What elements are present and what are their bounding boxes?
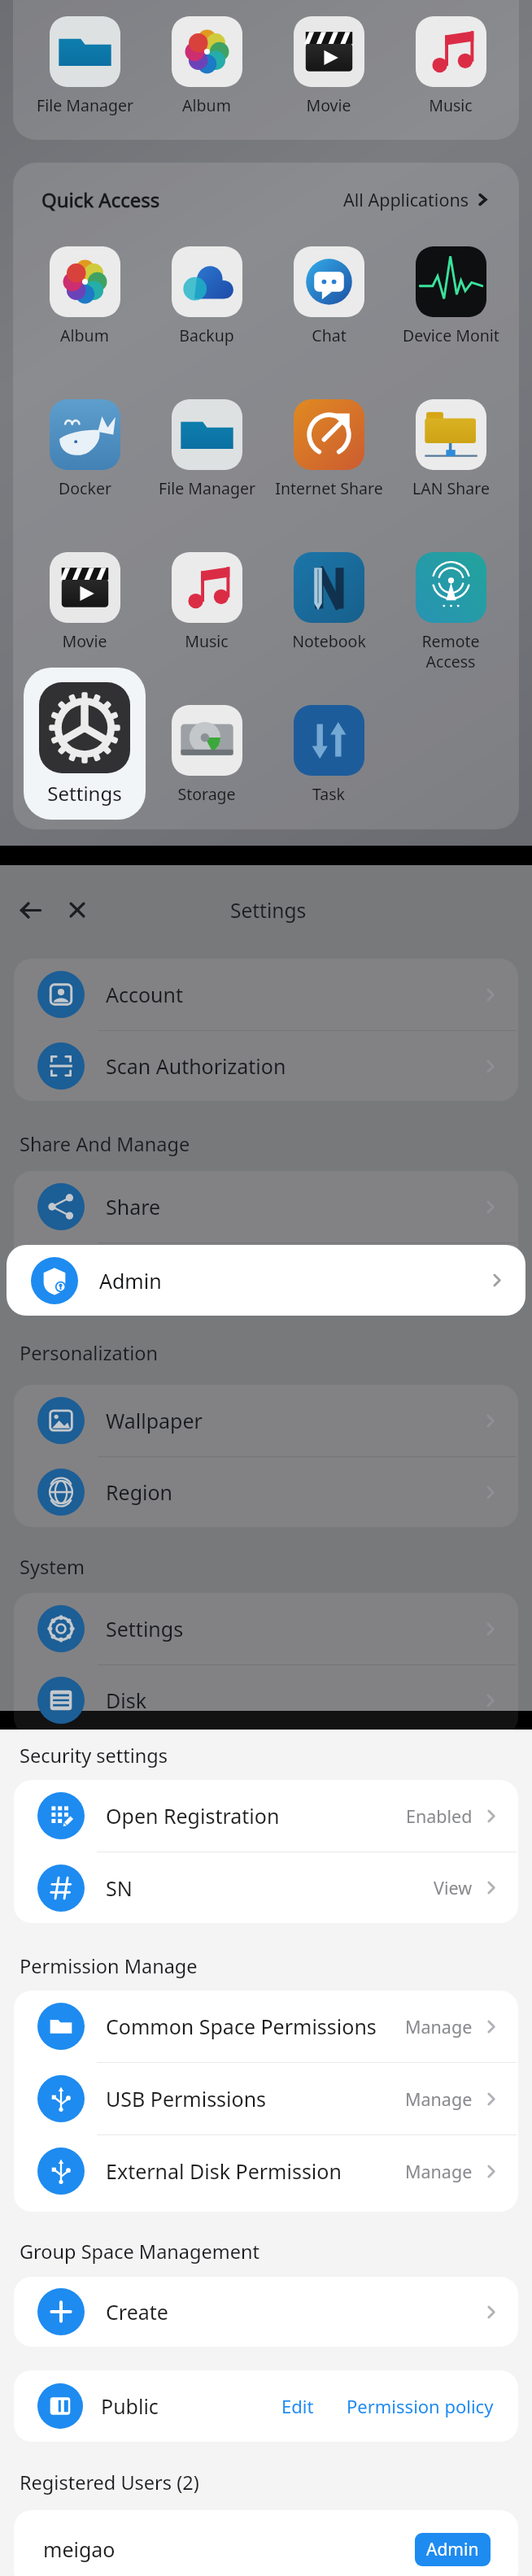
staticText: Music [429, 94, 473, 116]
staticText: Personalization [20, 1340, 158, 1366]
staticText: Storage [177, 783, 236, 805]
staticText: Album [60, 324, 109, 346]
staticText: All Applications [343, 188, 469, 211]
staticText: meigao [43, 2535, 116, 2563]
staticText: Manage [405, 2087, 473, 2111]
staticText: File Manager [37, 94, 133, 116]
staticText: Backup [179, 324, 234, 346]
staticText: Music [185, 630, 229, 652]
button[interactable]: Admin [7, 1245, 525, 1316]
button[interactable]: Permission policy [342, 2387, 499, 2425]
button[interactable]: Close [58, 890, 97, 929]
button[interactable]: Task [268, 693, 389, 805]
staticText: Chat [312, 324, 347, 346]
staticText: Task [312, 783, 345, 805]
button[interactable]: Public [14, 2370, 518, 2442]
staticText: Admin [106, 1264, 168, 1292]
staticText: Region [106, 1478, 173, 1506]
staticText: Notebook [292, 630, 366, 652]
button[interactable]: All Applications [343, 188, 490, 211]
staticText: Create [106, 2298, 168, 2326]
button[interactable]: Backup [146, 234, 267, 346]
staticText: Device Monit [403, 324, 499, 346]
staticText: LAN Share [412, 477, 490, 499]
button[interactable]: Notebook [268, 540, 389, 652]
staticText: Edit [281, 2394, 314, 2418]
staticText: Settings [106, 1615, 184, 1643]
staticText: Quick Access [41, 186, 160, 213]
button[interactable]: LAN Share [390, 387, 511, 499]
button[interactable]: USB Permissions [14, 2063, 518, 2134]
staticText: Security settings [20, 1743, 168, 1769]
staticText: Disk [106, 1686, 147, 1714]
staticText: Open Registration [106, 1802, 280, 1830]
staticText: Settings [230, 897, 307, 924]
button[interactable]: Wallpaper [14, 1385, 518, 1456]
staticText: Admin [99, 1267, 162, 1295]
staticText: Permission policy [347, 2394, 494, 2418]
button[interactable]: Account [14, 959, 518, 1030]
staticText: Manage [405, 2160, 473, 2183]
button[interactable]: Open Registration [14, 1780, 518, 1851]
staticText: Share [106, 1193, 161, 1221]
staticText: Enabled [406, 1804, 473, 1828]
staticText: Remote Access [421, 630, 480, 672]
staticText: Common Space Permissions [106, 2012, 377, 2040]
staticText: External Disk Permission [106, 2157, 342, 2185]
staticText: Public [101, 2392, 159, 2420]
staticText: Wallpaper [106, 1407, 203, 1434]
button[interactable]: Scan Authorization [14, 1031, 518, 1101]
button[interactable]: Back [11, 890, 50, 929]
staticText: Permission Manage [20, 1953, 198, 1979]
staticText: Album [182, 94, 231, 116]
staticText: System [20, 1554, 85, 1580]
staticText: Manage [405, 2015, 473, 2039]
button[interactable]: External Disk Permission [14, 2135, 518, 2207]
staticText: Movie [306, 94, 351, 116]
staticText: Internet Share [275, 477, 383, 499]
button[interactable]: Disk [14, 1665, 518, 1735]
button[interactable]: Remote Access [390, 540, 511, 672]
button[interactable]: meigao [14, 2510, 518, 2576]
button[interactable]: File Manager [146, 387, 267, 499]
button[interactable]: Share [14, 1171, 518, 1242]
staticText: SN [106, 1874, 133, 1902]
button[interactable]: Settings [24, 668, 146, 820]
staticText: Account [106, 981, 184, 1008]
staticText: Movie [62, 630, 107, 652]
staticText: Scan Authorization [106, 1052, 286, 1080]
button[interactable]: Movie [268, 4, 389, 116]
staticText: File Manager [159, 477, 255, 499]
button[interactable]: File Manager [24, 4, 145, 116]
button[interactable]: Movie [24, 540, 145, 652]
button[interactable]: Music [146, 540, 267, 652]
button[interactable]: Common Space Permissions [14, 1991, 518, 2062]
button[interactable]: Region [14, 1457, 518, 1527]
button[interactable]: Album [146, 4, 267, 116]
staticText: USB Permissions [106, 2085, 267, 2113]
staticText: Registered Users (2) [20, 2469, 199, 2495]
button[interactable]: Settings [14, 1593, 518, 1664]
button[interactable]: Internet Share [268, 387, 389, 499]
button[interactable]: Edit [277, 2387, 319, 2425]
button[interactable]: Chat [268, 234, 389, 346]
button[interactable]: Admin [14, 1243, 518, 1313]
button[interactable]: Album [24, 234, 145, 346]
staticText: View [434, 1876, 473, 1899]
button[interactable]: Music [390, 4, 511, 116]
staticText: Share And Manage [20, 1131, 190, 1157]
staticText: Admin [426, 2538, 479, 2561]
button[interactable]: Create [14, 2277, 518, 2347]
button[interactable]: SN [14, 1852, 518, 1923]
staticText: Settings [47, 780, 122, 807]
staticText: Group Space Management [20, 2239, 259, 2265]
button[interactable]: Device Monit [390, 234, 511, 346]
staticText: Docker [59, 477, 111, 499]
button[interactable]: Storage [146, 693, 267, 805]
button[interactable]: Docker [24, 387, 145, 499]
button[interactable]: Admin [415, 2533, 491, 2566]
